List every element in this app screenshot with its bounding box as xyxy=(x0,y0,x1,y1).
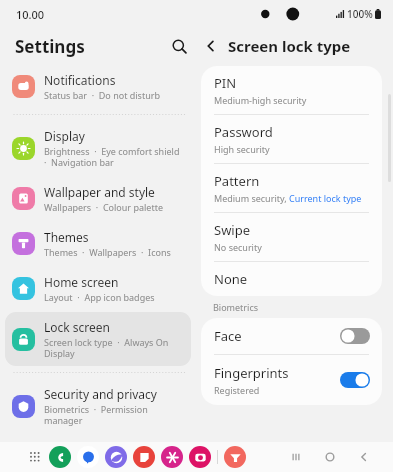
staticText: 10.00 xyxy=(16,7,45,22)
staticText: Display xyxy=(44,128,85,144)
button[interactable]: Display xyxy=(5,121,191,175)
staticText: Themes xyxy=(44,229,89,245)
button[interactable]: Home screen xyxy=(5,267,191,310)
button[interactable]: Phone xyxy=(49,446,71,468)
button[interactable]: Back xyxy=(196,31,226,61)
button[interactable]: Gallery xyxy=(161,446,183,468)
button[interactable]: Pattern xyxy=(201,164,382,212)
staticText: Registered xyxy=(214,384,260,396)
button[interactable]: Recent apps xyxy=(279,443,313,471)
staticText: Location xyxy=(44,442,93,458)
button[interactable]: Password xyxy=(201,115,382,163)
button[interactable]: Home xyxy=(313,443,347,471)
staticText: Wallpaper and style xyxy=(44,184,155,200)
staticText: Password xyxy=(214,123,273,141)
button[interactable]: PIN xyxy=(201,66,382,114)
staticText: Screen lock type xyxy=(228,36,351,56)
button[interactable]: Messages xyxy=(77,446,99,468)
button[interactable]: Fingerprints xyxy=(201,355,382,405)
staticText: None xyxy=(214,270,248,288)
staticText: No security xyxy=(214,241,262,253)
button[interactable]: Lock screen xyxy=(5,312,191,366)
button[interactable]: Themes xyxy=(5,222,191,265)
staticText: Face xyxy=(214,327,242,345)
staticText: Location requests xyxy=(44,459,120,464)
staticText: Medium-high security xyxy=(214,94,307,106)
button[interactable]: Security and privacy xyxy=(5,379,191,433)
staticText: Swipe xyxy=(214,221,251,239)
button[interactable]: Apps xyxy=(24,446,46,468)
staticText: Wallpapers · Colour palette xyxy=(44,201,163,213)
button[interactable]: None xyxy=(201,262,382,296)
staticText: Biometrics xyxy=(213,301,259,313)
staticText: High security xyxy=(214,143,270,155)
staticText: Layout · App icon badges xyxy=(44,291,155,303)
staticText: Pattern xyxy=(214,172,260,190)
button[interactable]: Notes xyxy=(133,446,155,468)
staticText: Fingerprints xyxy=(214,364,289,382)
button[interactable]: Location xyxy=(5,435,191,471)
button[interactable]: Camera xyxy=(189,446,211,468)
staticText: 100% xyxy=(347,7,373,21)
button[interactable]: Face xyxy=(201,318,382,354)
button[interactable]: Internet xyxy=(105,446,127,468)
staticText: Settings xyxy=(15,35,162,58)
staticText: Biometrics · Permission manager xyxy=(44,403,185,426)
button[interactable]: Wallpaper and style xyxy=(5,177,191,220)
staticText: PIN xyxy=(214,74,237,92)
staticText: Lock screen xyxy=(44,319,111,335)
button[interactable]: Search xyxy=(162,29,196,63)
staticText: Current lock type xyxy=(289,192,362,204)
button[interactable]: Galaxy Store xyxy=(224,446,246,468)
staticText: Medium security, xyxy=(214,192,289,204)
staticText: Security and privacy xyxy=(44,386,157,402)
button[interactable]: Notifications xyxy=(5,65,191,108)
staticText: Notifications xyxy=(44,72,116,88)
staticText: Status bar · Do not disturb xyxy=(44,89,160,101)
staticText: Screen lock type · Always On Display xyxy=(44,336,185,359)
staticText: Brightness · Eye comfort shield · Naviga… xyxy=(44,145,185,168)
button[interactable]: Back xyxy=(347,443,381,471)
staticText: Home screen xyxy=(44,274,119,290)
button[interactable]: Swipe xyxy=(201,213,382,261)
staticText: Themes · Wallpapers · Icons xyxy=(44,246,171,258)
